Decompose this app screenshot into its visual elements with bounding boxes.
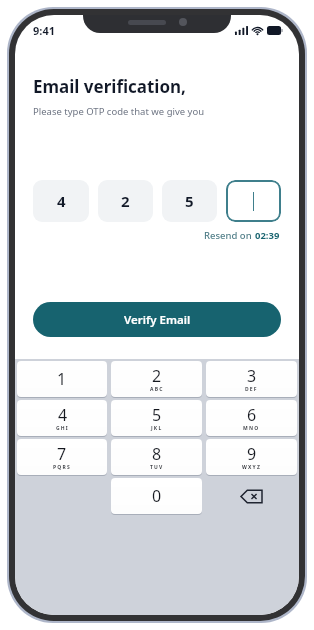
button[interactable]: Backspace: [206, 478, 297, 514]
staticText: 2: [152, 365, 162, 387]
staticText: 8: [152, 443, 162, 465]
staticText: 4: [57, 191, 66, 211]
button[interactable]: OTP digit 4 input: [226, 180, 281, 222]
button[interactable]: Verify Email: [33, 302, 281, 337]
staticText: 3: [247, 365, 257, 387]
staticText: DEF: [245, 386, 258, 393]
button[interactable]: 3: [206, 361, 297, 397]
staticText: PQRS: [53, 464, 71, 471]
staticText: 9: [247, 443, 257, 465]
button[interactable]: 4: [17, 400, 107, 436]
staticText: TUV: [150, 464, 164, 471]
staticText: 2: [121, 191, 130, 211]
staticText: ABC: [150, 386, 164, 393]
button[interactable]: 5: [162, 180, 217, 222]
staticText: 9:41: [33, 23, 55, 38]
button[interactable]: 5: [111, 400, 202, 436]
button[interactable]: 4: [33, 180, 89, 222]
button[interactable]: 7: [17, 439, 107, 475]
staticText: Resend on: [204, 229, 255, 242]
staticText: 4: [58, 404, 68, 426]
button[interactable]: 9: [206, 439, 297, 475]
staticText: 7: [57, 443, 67, 465]
staticText: Email verification,: [33, 75, 186, 98]
button[interactable]: 1: [17, 361, 107, 397]
staticText: WXYZ: [242, 464, 262, 471]
staticText: 5: [152, 404, 162, 426]
staticText: Please type OTP code that we give you: [33, 105, 205, 118]
button[interactable]: 6: [206, 400, 297, 436]
staticText: GHI: [56, 425, 69, 432]
staticText: MNO: [243, 425, 260, 432]
button[interactable]: 0: [111, 478, 202, 514]
button[interactable]: 2: [111, 361, 202, 397]
staticText: 1: [57, 368, 67, 390]
staticText: 0: [152, 485, 162, 507]
staticText: 5: [185, 191, 194, 211]
staticText: Verify Email: [124, 312, 191, 328]
staticText: JKL: [151, 425, 163, 432]
button[interactable]: 8: [111, 439, 202, 475]
button[interactable]: 2: [98, 180, 153, 222]
staticText: 02:39: [255, 229, 280, 242]
staticText: 6: [247, 404, 257, 426]
